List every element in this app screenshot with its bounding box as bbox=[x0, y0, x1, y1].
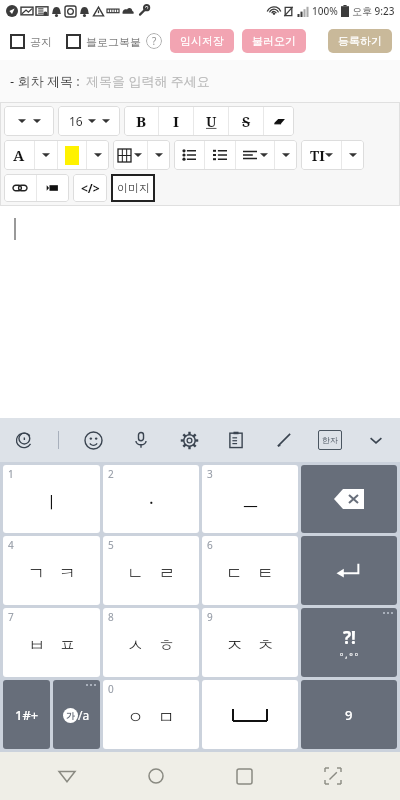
button[interactable]: 5 bbox=[103, 536, 199, 605]
staticText: ㅡ bbox=[242, 492, 259, 513]
button[interactable] bbox=[202, 680, 298, 749]
button[interactable]: 1#+ bbox=[3, 680, 50, 749]
button[interactable]: 9 bbox=[301, 680, 397, 749]
staticText: - 회차 제목 : bbox=[10, 72, 80, 90]
button[interactable]: 불러오기 bbox=[242, 29, 306, 53]
staticText: 가 bbox=[66, 710, 75, 721]
staticText: ㅣ bbox=[43, 492, 60, 513]
staticText: 9 bbox=[345, 706, 353, 724]
button[interactable]: Help bbox=[146, 33, 162, 49]
button[interactable]: Hide keyboard bbox=[362, 426, 390, 454]
button[interactable]: U bbox=[194, 106, 228, 136]
staticText: 불러오기 bbox=[252, 34, 296, 48]
button[interactable] bbox=[35, 140, 57, 170]
button[interactable]: Recents bbox=[222, 754, 266, 798]
staticText: 0 bbox=[108, 682, 114, 696]
button[interactable]: 4 bbox=[3, 536, 100, 605]
staticText: ㅈ bbox=[226, 635, 243, 656]
staticText: 제목을 입력해 주세요 bbox=[86, 72, 210, 90]
button[interactable]: 블로그복붙 bbox=[66, 34, 141, 49]
button[interactable]: Home bbox=[134, 754, 178, 798]
staticText: ㄴ bbox=[127, 563, 144, 584]
button[interactable]: Emoji bbox=[79, 426, 107, 454]
button[interactable]: 이미지 bbox=[111, 174, 155, 202]
staticText: · bbox=[149, 491, 154, 514]
button[interactable]: 2 bbox=[103, 465, 199, 533]
staticText: A bbox=[13, 145, 25, 165]
staticText: ᵒ , ᵒ ᵒ bbox=[340, 649, 358, 660]
button[interactable]: 7 bbox=[3, 608, 100, 677]
button[interactable] bbox=[342, 140, 364, 170]
button[interactable]: 3 bbox=[202, 465, 298, 533]
button[interactable] bbox=[4, 174, 36, 202]
button[interactable] bbox=[275, 140, 297, 170]
staticText: ㄷ bbox=[226, 563, 243, 584]
button[interactable]: I bbox=[159, 106, 193, 136]
staticText: 9 bbox=[207, 610, 213, 624]
button[interactable]: 8 bbox=[103, 608, 199, 677]
staticText: ㅎ bbox=[158, 635, 175, 656]
button[interactable]: 0 bbox=[103, 680, 199, 749]
button[interactable]: Enter bbox=[301, 536, 397, 605]
staticText: ㅊ bbox=[257, 635, 274, 656]
staticText: 5 bbox=[108, 538, 114, 552]
staticText: 오후 9:23 bbox=[352, 4, 395, 18]
button[interactable]: A bbox=[4, 140, 34, 170]
staticText: 8 bbox=[108, 610, 114, 624]
button[interactable] bbox=[37, 174, 69, 202]
staticText: 블로그복붙 bbox=[86, 35, 141, 49]
staticText: ㅁ bbox=[158, 707, 175, 728]
button[interactable]: Suggestions bbox=[10, 426, 38, 454]
staticText: TI bbox=[310, 146, 325, 165]
staticText: ㅅ bbox=[127, 635, 144, 656]
button[interactable]: 6 bbox=[202, 536, 298, 605]
button[interactable] bbox=[264, 106, 294, 136]
staticText: ?! bbox=[343, 626, 356, 649]
button[interactable] bbox=[174, 140, 204, 170]
button[interactable]: Voice input bbox=[127, 426, 155, 454]
staticText: ㄱ bbox=[28, 563, 45, 584]
staticText: S bbox=[242, 112, 251, 131]
staticText: 이미지 bbox=[117, 181, 150, 195]
button[interactable]: S bbox=[229, 106, 263, 136]
staticText: 7 bbox=[8, 610, 14, 624]
staticText: ㅍ bbox=[59, 635, 76, 656]
staticText: ㄹ bbox=[158, 563, 175, 584]
staticText: 공지 bbox=[30, 35, 52, 49]
button[interactable]: 공지 bbox=[10, 34, 52, 49]
button[interactable]: Backspace bbox=[301, 465, 397, 533]
button[interactable] bbox=[205, 140, 235, 170]
staticText: 4 bbox=[8, 538, 14, 552]
button[interactable]: Language bbox=[53, 680, 100, 749]
staticText: 3 bbox=[207, 467, 213, 481]
button[interactable] bbox=[113, 140, 147, 170]
staticText: ㅋ bbox=[59, 563, 76, 584]
button[interactable]: 9 bbox=[202, 608, 298, 677]
button[interactable] bbox=[4, 106, 54, 136]
button[interactable] bbox=[58, 140, 86, 170]
button[interactable]: Punctuation bbox=[301, 608, 397, 677]
button[interactable] bbox=[148, 140, 170, 170]
staticText: 16 bbox=[69, 113, 83, 129]
button[interactable]: Screenshot bbox=[311, 754, 355, 798]
staticText: ? bbox=[152, 34, 157, 48]
button[interactable]: Back bbox=[45, 754, 89, 798]
button[interactable]: 16 bbox=[58, 106, 120, 136]
button[interactable] bbox=[236, 140, 274, 170]
button[interactable]: 한자 bbox=[318, 430, 342, 450]
staticText: U bbox=[206, 112, 217, 131]
button[interactable]: TI bbox=[301, 140, 341, 170]
button[interactable]: Settings bbox=[175, 426, 203, 454]
button[interactable]: Handwriting bbox=[270, 426, 298, 454]
button[interactable]: 등록하기 bbox=[328, 29, 392, 53]
button[interactable]: B bbox=[124, 106, 158, 136]
button[interactable]: 1 bbox=[3, 465, 100, 533]
button[interactable]: </> bbox=[73, 174, 107, 202]
staticText: </> bbox=[81, 180, 100, 196]
button[interactable]: Clipboard bbox=[222, 426, 250, 454]
staticText: 2 bbox=[108, 467, 114, 481]
staticText: ㅌ bbox=[257, 563, 274, 584]
staticText: 1 bbox=[8, 467, 14, 481]
button[interactable] bbox=[87, 140, 109, 170]
button[interactable]: 임시저장 bbox=[170, 29, 234, 53]
